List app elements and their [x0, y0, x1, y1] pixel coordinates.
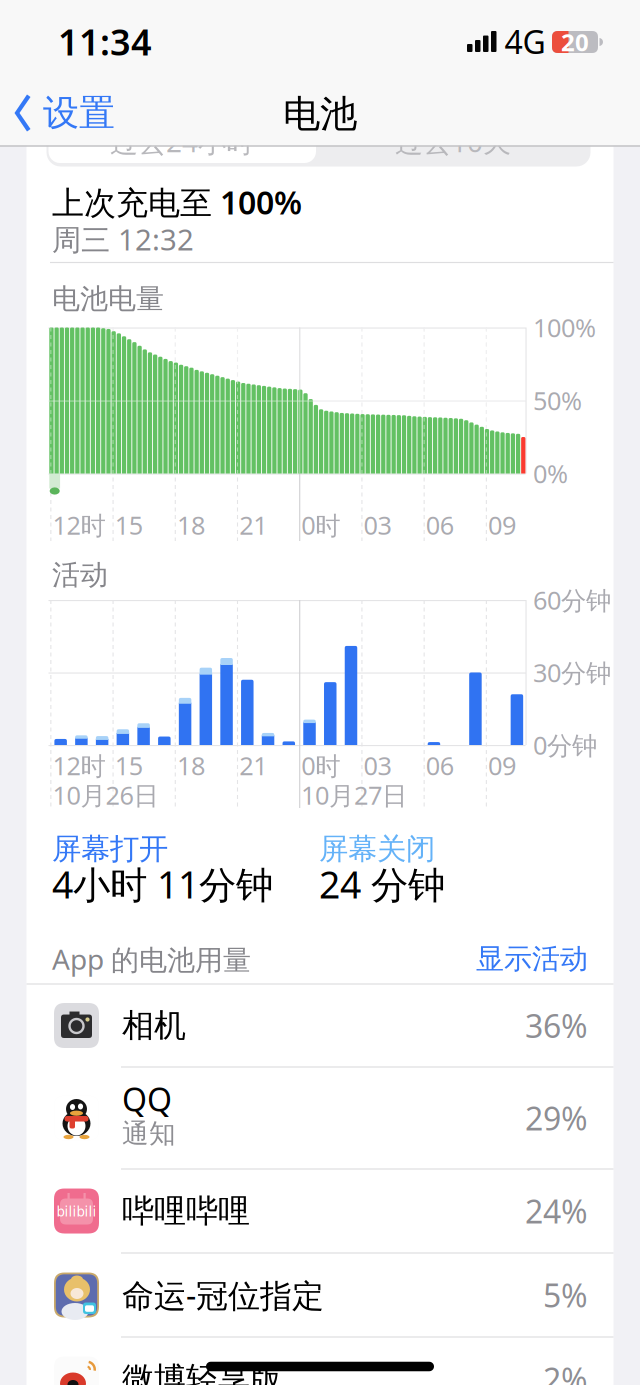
button[interactable]: 过去24小时: [46, 111, 318, 165]
button[interactable]: 返回设置: [0, 83, 120, 143]
staticText: 0%: [533, 457, 568, 490]
staticText: 相机: [122, 1006, 186, 1045]
staticText: 50%: [533, 384, 582, 417]
button[interactable]: 命运-冠位指定: [26, 1253, 613, 1337]
staticText: 15: [115, 749, 143, 782]
staticText: 12时: [52, 508, 105, 542]
staticText: 0时: [301, 749, 340, 782]
button[interactable]: 微博轻享版: [26, 1337, 613, 1385]
staticText: 电池: [283, 91, 357, 137]
staticText: 09: [488, 749, 516, 782]
staticText: 屏幕打开: [52, 831, 168, 867]
button[interactable]: 过去10天: [317, 112, 589, 166]
staticText: 通知: [122, 1117, 176, 1150]
staticText: 5%: [543, 1274, 588, 1316]
staticText: 过去10天: [395, 123, 511, 160]
staticText: 24 分钟: [319, 859, 445, 909]
staticText: 18: [177, 508, 205, 542]
staticText: 4G: [504, 20, 545, 63]
staticText: 21: [239, 749, 267, 782]
staticText: 03: [364, 749, 392, 782]
staticText: 电池电量: [52, 282, 164, 316]
staticText: QQ: [122, 1078, 172, 1120]
button[interactable]: QQ: [26, 1067, 613, 1169]
staticText: 0时: [301, 508, 340, 542]
staticText: 36%: [525, 1004, 588, 1047]
button[interactable]: 相机: [26, 984, 613, 1067]
staticText: 09: [488, 508, 516, 542]
staticText: 上次充电至 100%: [52, 181, 302, 223]
staticText: 12时: [52, 749, 105, 782]
staticText: 显示活动: [476, 942, 588, 976]
staticText: 2%: [543, 1358, 588, 1385]
staticText: bilibili: [56, 1204, 96, 1220]
staticText: 60分钟: [533, 583, 611, 617]
staticText: 18: [177, 749, 205, 782]
staticText: 过去24小时: [110, 123, 254, 160]
staticText: 11:34: [58, 18, 152, 65]
staticText: 06: [426, 749, 454, 782]
button[interactable]: 显示活动: [428, 937, 588, 981]
staticText: 命运-冠位指定: [122, 1274, 324, 1316]
staticText: 活动: [52, 558, 108, 592]
staticText: 哔哩哔哩: [122, 1191, 250, 1231]
staticText: 30分钟: [533, 656, 611, 689]
staticText: 10月27日: [301, 778, 407, 812]
staticText: 4小时 11分钟: [52, 859, 273, 909]
staticText: 微博轻享版: [122, 1359, 282, 1385]
staticText: 06: [426, 508, 454, 542]
staticText: 10月26日: [52, 778, 158, 812]
button[interactable]: bilibili: [26, 1169, 613, 1253]
staticText: 29%: [525, 1097, 588, 1139]
staticText: 15: [115, 508, 143, 542]
staticText: 屏幕关闭: [319, 831, 435, 867]
staticText: App 的电池用量: [52, 940, 251, 978]
staticText: 0分钟: [533, 728, 597, 762]
staticText: 21: [239, 508, 267, 542]
staticText: 03: [364, 508, 392, 542]
staticText: 100%: [533, 311, 596, 344]
staticText: 24%: [525, 1190, 588, 1232]
staticText: 20: [561, 26, 589, 58]
staticText: 周三 12:32: [52, 219, 194, 258]
staticText: 设置: [43, 91, 115, 135]
